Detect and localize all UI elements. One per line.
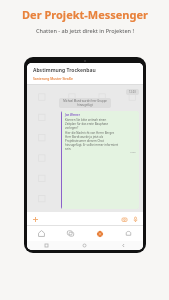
button[interactable]: Start	[27, 226, 56, 241]
staticText: Hier die Nachricht von Herrn Berger. Her…	[65, 131, 119, 151]
staticText: Sanierung Muster Straße	[33, 76, 73, 81]
button[interactable]: Sprachnachricht	[131, 215, 139, 223]
staticText: Jan Werner	[65, 113, 80, 117]
button[interactable]: Kamera	[120, 215, 128, 223]
button[interactable]: Projekte	[85, 226, 114, 241]
staticText: 12.03	[129, 90, 136, 94]
button[interactable]: Jan Werner	[61, 111, 139, 209]
staticText: Chatten - ab jetzt direkt in Projekten !	[36, 27, 134, 34]
staticText: Können Sie bitte zeitnah einen Zeitplan …	[65, 118, 109, 130]
button[interactable]: Anhang hinzufügen	[31, 215, 39, 223]
button[interactable]: Benachrichtigungen	[114, 226, 143, 241]
staticText: 13:20	[130, 151, 136, 154]
button[interactable]: Chats	[56, 226, 85, 241]
staticText: Der Projekt-Messenger	[22, 7, 148, 22]
staticText: Michael Mund wurde ihrer Gruppe hinzugef…	[63, 99, 107, 107]
staticText: Abstimmung Trockenbau	[33, 67, 96, 74]
